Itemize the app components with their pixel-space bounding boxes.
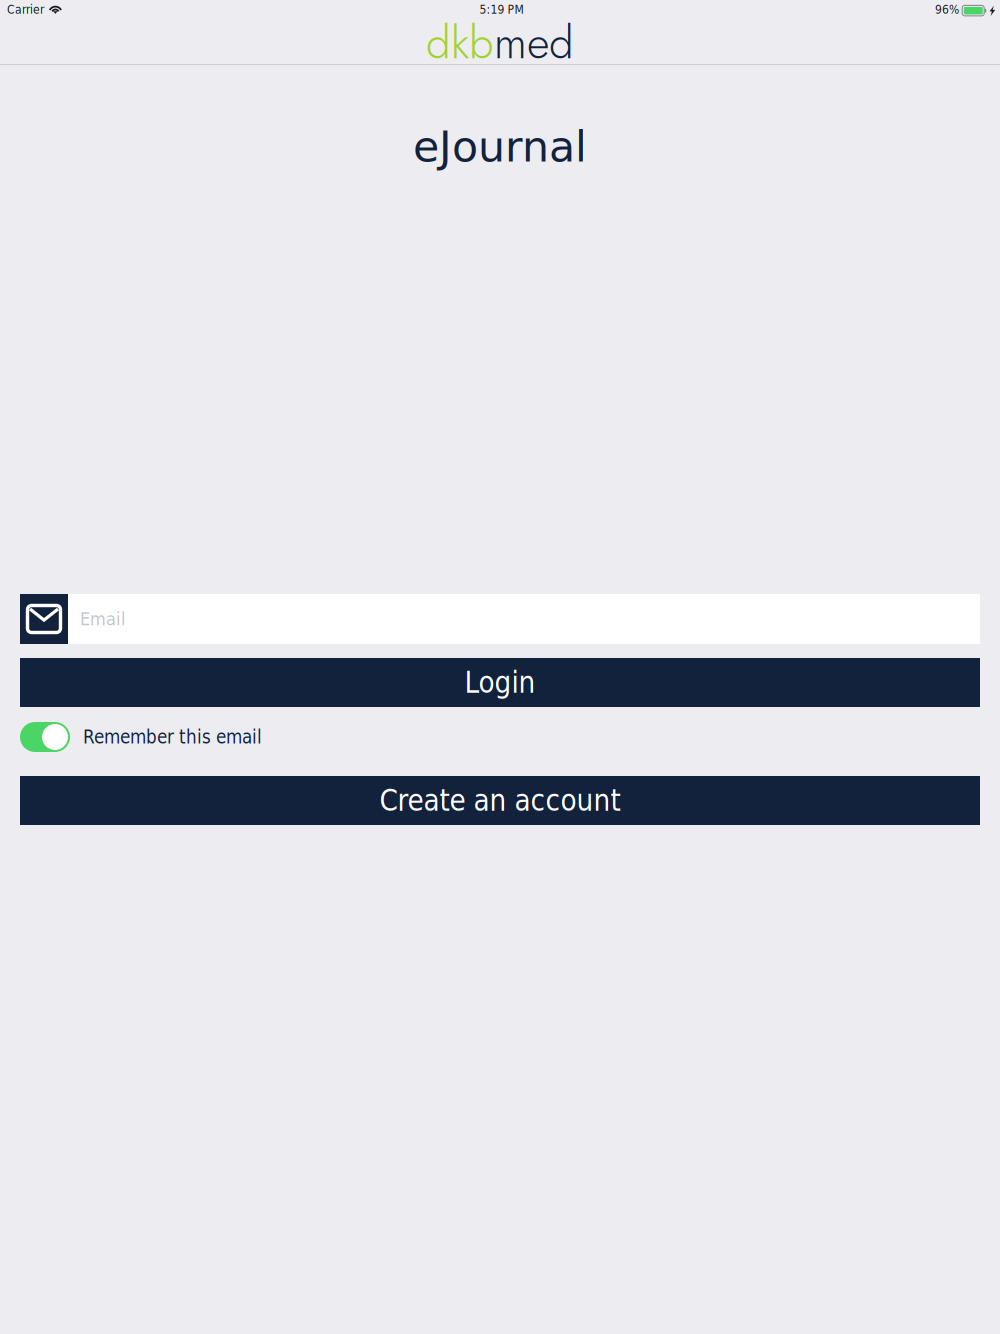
staticText: Create an account [379, 783, 620, 817]
staticText: eJournal [413, 122, 587, 172]
staticText: 96% [935, 2, 959, 16]
staticText: med [494, 11, 574, 75]
button[interactable]: Remember this email [0, 722, 1000, 752]
button[interactable]: Email [0, 594, 1000, 644]
staticText: Email [80, 608, 126, 629]
button[interactable]: Login [0, 658, 1000, 707]
staticText: 5:19 PM [479, 2, 523, 16]
staticText: dkb [426, 11, 494, 75]
staticText: Login [464, 665, 535, 699]
staticText: Remember this email [83, 726, 262, 748]
button[interactable]: Create an account [0, 776, 1000, 825]
staticText: Carrier [7, 2, 44, 16]
